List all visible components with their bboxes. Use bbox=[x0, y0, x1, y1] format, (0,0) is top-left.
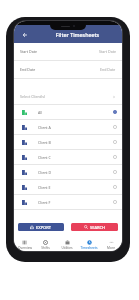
staticText: Filter Timesheets bbox=[33, 31, 122, 38]
staticText: More bbox=[107, 246, 115, 250]
staticText: Start Date bbox=[20, 49, 37, 54]
staticText: End Date bbox=[100, 67, 116, 72]
staticText: Client C bbox=[38, 155, 51, 160]
staticText: Select Client(s) bbox=[20, 94, 46, 99]
button[interactable]: Back bbox=[14, 25, 33, 43]
staticText: Client D bbox=[38, 170, 52, 175]
button[interactable]: Client F bbox=[14, 195, 122, 209]
staticText: Client F bbox=[38, 200, 51, 205]
staticText: Client A bbox=[38, 125, 51, 130]
button[interactable]: Select Client(s) bbox=[14, 89, 122, 104]
button[interactable]: Client B bbox=[14, 135, 122, 149]
staticText: Timesheets bbox=[80, 246, 98, 250]
button[interactable]: Client D bbox=[14, 165, 122, 179]
button[interactable]: SEARCH bbox=[71, 223, 118, 231]
staticText: End Date bbox=[20, 67, 36, 72]
staticText: Client B bbox=[38, 140, 51, 145]
staticText: All bbox=[38, 110, 43, 115]
button[interactable]: Overview bbox=[14, 239, 35, 251]
staticText: Client E bbox=[38, 185, 51, 190]
button[interactable]: Timesheets bbox=[78, 239, 100, 251]
staticText: Start Date bbox=[99, 49, 116, 54]
staticText: Utilities bbox=[61, 246, 73, 250]
button[interactable]: End Date bbox=[14, 61, 122, 78]
staticText: EXPORT bbox=[36, 225, 52, 230]
button[interactable]: Shifts bbox=[35, 239, 56, 251]
button[interactable]: Client C bbox=[14, 150, 122, 164]
button[interactable]: EXPORT bbox=[18, 223, 64, 231]
staticText: Shifts bbox=[41, 246, 50, 250]
button[interactable]: Utilities bbox=[56, 239, 78, 251]
button[interactable]: More bbox=[100, 239, 122, 251]
button[interactable]: All bbox=[14, 105, 122, 119]
button[interactable]: Start Date bbox=[14, 43, 122, 60]
button[interactable]: Client A bbox=[14, 120, 122, 134]
staticText: Overview bbox=[18, 246, 32, 250]
staticText: SEARCH bbox=[90, 225, 106, 230]
button[interactable]: Client E bbox=[14, 180, 122, 194]
